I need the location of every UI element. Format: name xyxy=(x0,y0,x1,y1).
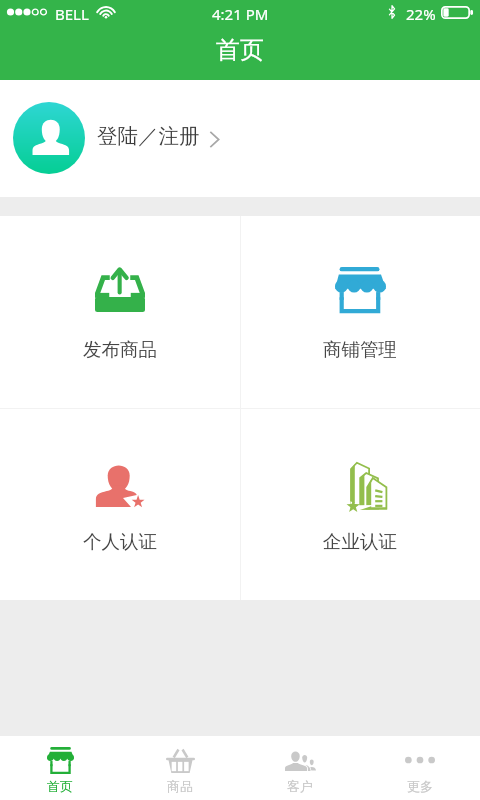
staticText: 登陆／注册 xyxy=(97,123,200,149)
staticText: 22% xyxy=(406,4,436,24)
staticText: 首页 xyxy=(47,778,73,794)
staticText: 发布商品 xyxy=(83,338,157,361)
button[interactable]: 首页 xyxy=(0,736,120,800)
staticText: 商铺管理 xyxy=(323,338,397,361)
button[interactable]: 商铺管理 xyxy=(240,216,480,408)
button[interactable]: 商品 xyxy=(120,736,240,800)
staticText: 客户 xyxy=(287,778,313,794)
button[interactable]: 个人认证 xyxy=(0,408,240,600)
staticText: 更多 xyxy=(407,778,433,794)
staticText: 企业认证 xyxy=(323,530,397,553)
staticText: 个人认证 xyxy=(83,530,157,553)
staticText: 首页 xyxy=(216,35,264,65)
button[interactable]: 企业认证 xyxy=(240,408,480,600)
staticText: 商品 xyxy=(167,778,193,794)
staticText: 4:21 PM xyxy=(212,4,269,24)
button[interactable]: 客户 xyxy=(240,736,360,800)
staticText: BELL xyxy=(55,4,89,24)
button[interactable]: 登陆／注册 xyxy=(0,80,480,197)
button[interactable]: 更多 xyxy=(360,736,480,800)
button[interactable]: 发布商品 xyxy=(0,216,240,408)
